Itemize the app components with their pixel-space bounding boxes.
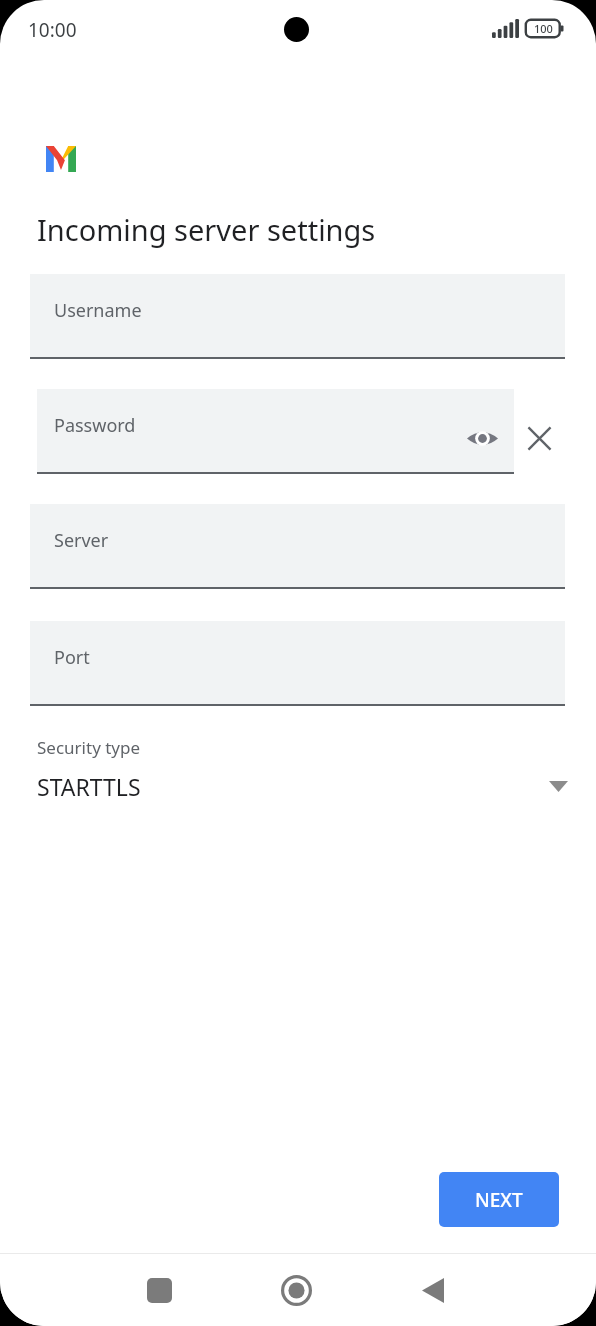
staticText: 10:00	[28, 17, 77, 43]
staticText: NEXT	[475, 1187, 523, 1213]
button[interactable]: Clear password	[514, 413, 564, 463]
button[interactable]: Back	[409, 1266, 457, 1314]
button[interactable]: NEXT	[439, 1172, 559, 1227]
button[interactable]: Server	[30, 504, 565, 589]
button[interactable]: Show password	[461, 417, 503, 459]
staticText: Password	[54, 413, 136, 438]
button[interactable]: Recent apps	[135, 1266, 183, 1314]
button[interactable]: Username	[30, 274, 565, 359]
button[interactable]: Password	[37, 389, 514, 474]
staticText: Server	[54, 528, 109, 553]
staticText: STARTTLS	[37, 771, 141, 802]
staticText: Username	[54, 298, 142, 323]
button[interactable]: Security type	[37, 736, 568, 802]
staticText: Security type	[37, 736, 141, 759]
staticText: Incoming server settings	[37, 210, 376, 249]
button[interactable]: Home	[272, 1266, 320, 1314]
staticText: 100	[534, 21, 553, 36]
button[interactable]: Port	[30, 621, 565, 706]
staticText: Port	[54, 645, 90, 670]
